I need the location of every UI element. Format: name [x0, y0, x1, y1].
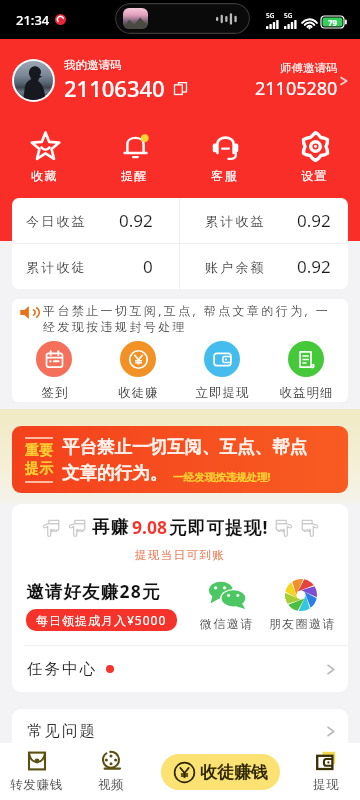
button[interactable]: Copy invite code: [174, 82, 187, 95]
staticText: 提现: [313, 777, 340, 793]
staticText: 平台禁止一切互阅,互点, 帮点文章的行为, 一经发现按违规封号处理: [43, 302, 340, 335]
staticText: 0.92: [119, 209, 153, 232]
button[interactable]: 微信邀请: [192, 580, 262, 631]
staticText: 每日领提成月入¥5000: [36, 612, 167, 628]
staticText: 师傅邀请码: [280, 61, 338, 75]
button[interactable]: 视频: [74, 743, 148, 800]
staticText: 设置: [301, 168, 329, 183]
staticText: 提现当日可到账: [12, 548, 348, 562]
staticText: 79: [328, 17, 338, 28]
staticText: 提示: [25, 460, 53, 478]
button[interactable]: 设置: [270, 130, 360, 185]
staticText: 转发赚钱: [10, 777, 64, 793]
staticText: 0.92: [297, 255, 331, 278]
button[interactable]: 任务中心: [12, 646, 348, 692]
staticText: 收藏: [31, 168, 59, 183]
staticText: 21:34: [16, 11, 50, 29]
button[interactable]: 收徒赚: [96, 341, 180, 401]
button[interactable]: 账户余额: [180, 244, 348, 289]
staticText: 再赚: [92, 516, 130, 538]
button[interactable]: 提现: [292, 743, 360, 800]
staticText: 视频: [98, 777, 125, 793]
staticText: 9.08: [132, 515, 167, 539]
staticText: 21106340: [64, 73, 165, 103]
button[interactable]: 重要: [12, 426, 348, 493]
button[interactable]: 立即提现: [180, 341, 264, 401]
staticText: 任务中心: [26, 659, 96, 679]
button[interactable]: 每日领提成月入¥5000: [26, 609, 177, 631]
staticText: 元即可提现!: [169, 515, 269, 539]
button[interactable]: 再赚: [12, 515, 348, 539]
button[interactable]: 平台禁止一切互阅,互点, 帮点文章的行为, 一经发现按违规封号处理: [12, 299, 348, 335]
button[interactable]: 常见问题: [12, 709, 348, 753]
staticText: 客服: [211, 168, 239, 183]
staticText: 0.92: [297, 209, 331, 232]
staticText: 今日收益: [26, 213, 87, 229]
button[interactable]: 收藏: [0, 130, 90, 185]
button[interactable]: 累计收益: [180, 198, 348, 243]
staticText: 0: [143, 255, 153, 278]
button[interactable]: 签到: [12, 341, 96, 401]
button[interactable]: 转发赚钱: [0, 743, 74, 800]
button[interactable]: Profile avatar: [14, 61, 53, 100]
button[interactable]: 累计收徒: [12, 244, 179, 289]
staticText: 收徒赚: [118, 385, 159, 401]
staticText: 收徒赚钱: [200, 762, 268, 783]
staticText: 邀请好友赚28元: [26, 579, 161, 603]
button[interactable]: 今日收益: [12, 198, 179, 243]
staticText: 一经发现按违规处理!: [173, 470, 271, 484]
staticText: 朋友圈邀请: [268, 616, 335, 631]
staticText: 累计收益: [205, 213, 266, 229]
staticText: 平台禁止一切互阅、互点、帮点: [62, 436, 307, 458]
staticText: 常见问题: [26, 721, 96, 741]
button[interactable]: 师傅邀请码: [255, 61, 350, 101]
button[interactable]: 收益明细: [264, 341, 348, 401]
staticText: 账户余额: [205, 259, 266, 275]
staticText: 21105280: [255, 76, 338, 101]
staticText: 重要: [25, 442, 53, 460]
staticText: 提醒: [121, 168, 149, 183]
staticText: 累计收徒: [26, 259, 87, 275]
button[interactable]: 朋友圈邀请: [262, 579, 340, 631]
button[interactable]: 客服: [180, 130, 270, 185]
staticText: 微信邀请: [200, 616, 254, 631]
staticText: 立即提现: [195, 385, 249, 401]
staticText: 文章的行为。: [62, 462, 167, 484]
staticText: 5G: [266, 11, 275, 20]
button[interactable]: 提醒: [90, 130, 180, 185]
staticText: 5G: [284, 11, 293, 20]
staticText: 我的邀请码: [64, 58, 122, 72]
button[interactable]: 收徒赚钱: [161, 754, 280, 790]
staticText: 签到: [41, 385, 68, 401]
staticText: 收益明细: [279, 385, 333, 401]
